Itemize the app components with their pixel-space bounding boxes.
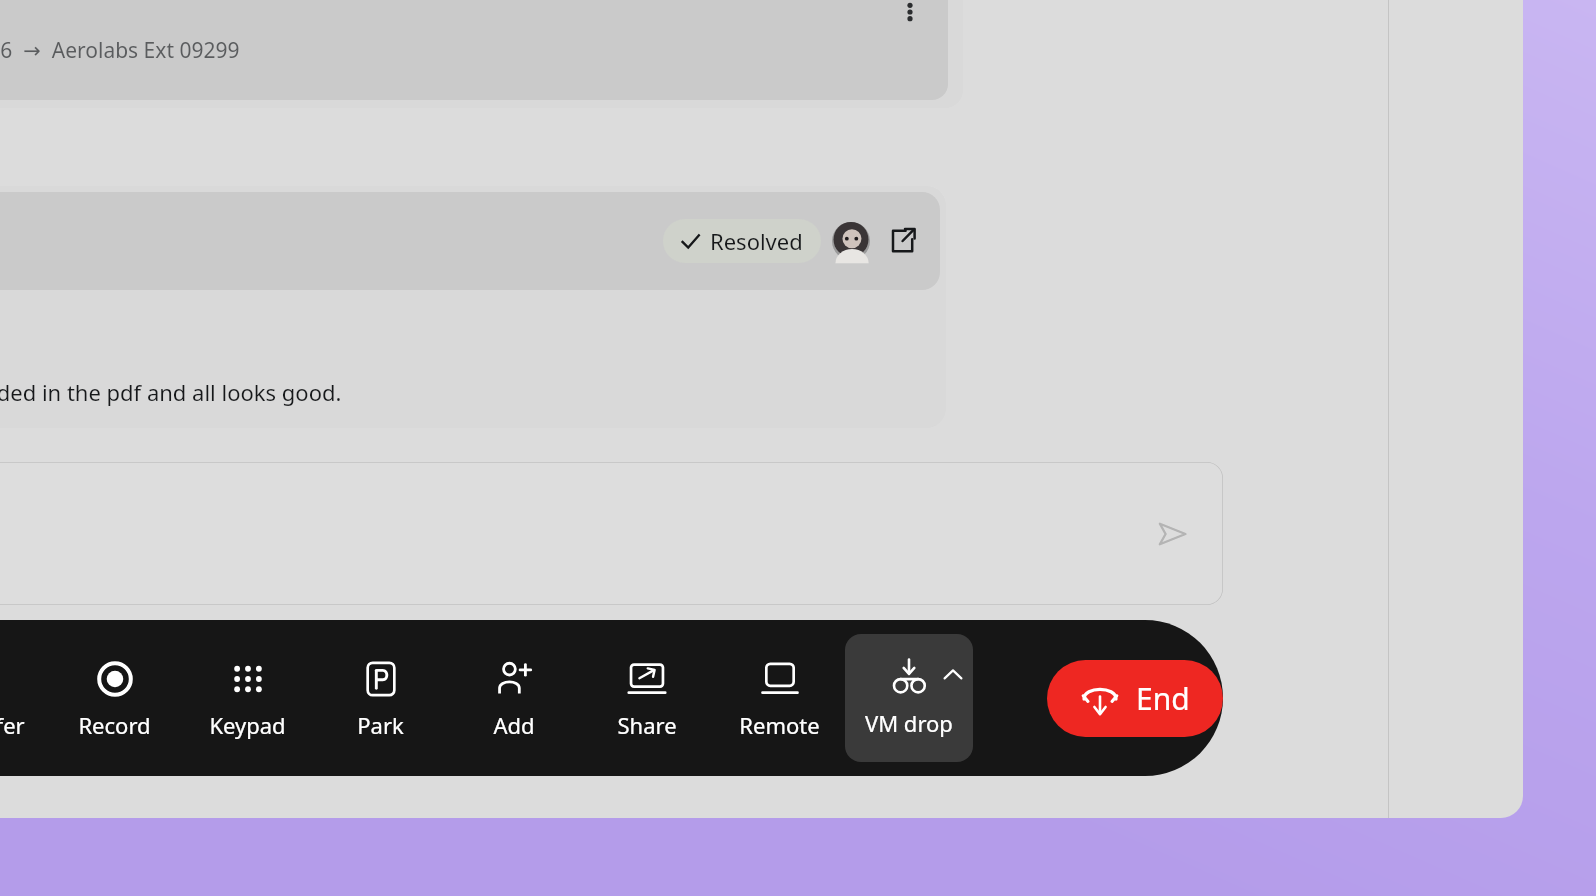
button[interactable]: Remote: [728, 640, 831, 756]
staticText: Park: [357, 710, 404, 740]
button[interactable]: Send: [1149, 511, 1195, 557]
button[interactable]: Resolved: [663, 219, 821, 263]
button[interactable]: Share: [595, 640, 698, 756]
staticText: Keypad: [209, 710, 286, 740]
staticText: Transfer: [0, 710, 25, 740]
button[interactable]: End: [1047, 660, 1223, 737]
button[interactable]: Add: [462, 640, 565, 756]
staticText: Share: [617, 710, 677, 740]
button[interactable]: Transfer: [0, 640, 33, 756]
staticText: Resolved: [710, 226, 803, 256]
staticText: End: [1136, 678, 1190, 719]
button[interactable]: Keypad: [196, 640, 299, 756]
button[interactable]: Transferred call: [0, 0, 963, 108]
button[interactable]: Park: [329, 640, 432, 756]
staticText: I reviewed the content needed in the pdf…: [0, 377, 342, 407]
button[interactable]: More options: [888, 0, 932, 34]
button[interactable]: VM drop: [845, 634, 973, 762]
staticText: Record: [78, 710, 151, 740]
staticText: Add: [493, 710, 535, 740]
button[interactable]: Call • From (800)504-9978: [0, 186, 946, 428]
staticText: Sales support (240) 608-2936 → Aerolabs …: [0, 36, 240, 65]
staticText: VM drop: [865, 708, 953, 738]
staticText: Remote: [739, 710, 820, 740]
button[interactable]: Open in new window: [882, 221, 922, 261]
button[interactable]: Record: [63, 640, 166, 756]
